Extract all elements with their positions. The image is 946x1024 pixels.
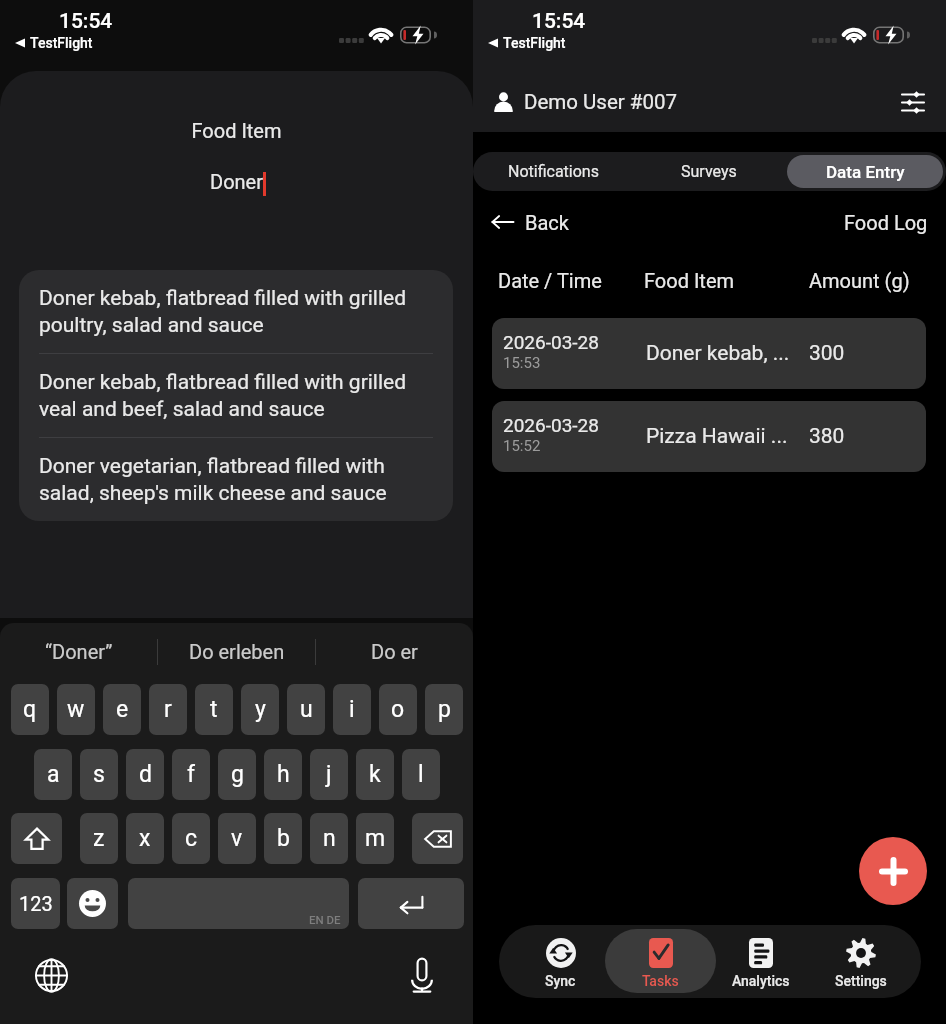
button[interactable]: Backspace [412,813,463,864]
staticText: Date / Time [498,269,602,292]
button[interactable]: Surveys [631,155,787,188]
staticText: 380 [809,424,845,449]
button[interactable]: Do erleben [158,623,315,680]
staticText: x [139,825,151,852]
button[interactable]: k [356,749,394,800]
staticText: p [438,696,451,723]
button[interactable]: 2026-03-28 [492,318,926,389]
staticText: t [210,696,218,723]
staticText: j [326,761,332,788]
staticText: 15:52 [503,437,541,455]
staticText: q [23,696,37,723]
button[interactable]: j [310,749,348,800]
button[interactable]: Doner vegetarian, flatbread filled with … [19,438,453,521]
button[interactable]: Doner kebab, flatbread filled with grill… [19,354,453,437]
button[interactable]: Return [358,878,464,929]
staticText: 123 [19,892,53,915]
staticText: c [185,825,198,852]
staticText: TestFlight [503,35,566,51]
button[interactable]: h [264,749,302,800]
staticText: h [277,761,290,788]
button[interactable]: Emoji [67,878,118,929]
button[interactable]: s [80,749,118,800]
staticText: s [93,761,105,788]
staticText: f [187,761,195,788]
button[interactable]: Back [491,210,575,234]
button[interactable]: n [310,813,348,864]
button[interactable]: v [218,813,256,864]
staticText: 15:54 [532,9,586,34]
button[interactable]: z [80,813,118,864]
button[interactable]: Notifications [476,155,631,188]
staticText: b [277,825,290,852]
staticText: Sync [545,973,576,989]
staticText: Doner [0,170,473,193]
staticText: n [323,825,336,852]
button[interactable]: y [241,684,279,735]
staticText: Pizza Hawaii ... [646,424,788,449]
staticText: l [418,761,424,788]
button[interactable]: Dictate [399,953,444,998]
staticText: Tasks [642,973,679,989]
staticText: EN DE [309,913,341,926]
staticText: Amount (g) [809,269,910,292]
staticText: Food Item [0,119,473,142]
button[interactable]: w [57,684,95,735]
button[interactable]: e [103,684,141,735]
button[interactable]: Analytics [705,929,816,993]
staticText: z [93,825,105,852]
button[interactable]: 123 [11,878,60,929]
staticText: v [231,825,243,852]
staticText: g [231,761,244,788]
button[interactable]: Space [128,878,349,929]
button[interactable]: Switch keyboard [29,953,74,998]
button[interactable]: Add entry [859,837,927,905]
button[interactable]: Shift [11,813,62,864]
button[interactable]: Sync [505,929,616,993]
button[interactable]: m [356,813,394,864]
staticText: e [116,696,129,723]
staticText: y [255,696,266,723]
button[interactable]: l [402,749,440,800]
button[interactable]: x [126,813,164,864]
button[interactable]: Tasks [605,929,716,993]
staticText: 15:54 [59,9,113,34]
staticText: Settings [835,973,887,989]
button[interactable]: c [172,813,210,864]
staticText: d [139,761,152,788]
button[interactable]: Do er [316,623,473,680]
button[interactable]: Data Entry [787,155,943,188]
button[interactable]: 2026-03-28 [492,401,926,472]
button[interactable]: b [264,813,302,864]
staticText: Notifications [508,162,599,181]
staticText: k [369,761,381,788]
button[interactable]: Filters [895,84,931,120]
staticText: Analytics [732,973,790,989]
staticText: Surveys [681,162,737,181]
staticText: u [300,696,313,723]
button[interactable]: g [218,749,256,800]
staticText: r [164,696,172,723]
button[interactable]: Doner kebab, flatbread filled with grill… [19,270,453,353]
staticText: m [365,825,386,852]
button[interactable]: “Doner” [0,623,157,680]
button[interactable]: f [172,749,210,800]
button[interactable]: a [34,749,72,800]
button[interactable]: u [287,684,325,735]
button[interactable]: p [425,684,463,735]
button[interactable]: d [126,749,164,800]
button[interactable]: t [195,684,233,735]
button[interactable]: i [333,684,371,735]
button[interactable]: q [11,684,49,735]
staticText: 2026-03-28 [503,331,599,353]
staticText: Food Log [844,211,928,234]
staticText: Food Item [644,269,735,292]
staticText: i [349,696,355,723]
staticText: o [391,696,405,723]
staticText: Doner kebab, flatbread filled with grill… [39,370,433,421]
staticText: a [47,761,60,788]
button[interactable]: o [379,684,417,735]
button[interactable]: r [149,684,187,735]
button[interactable]: Settings [805,929,916,993]
staticText: w [67,696,85,723]
